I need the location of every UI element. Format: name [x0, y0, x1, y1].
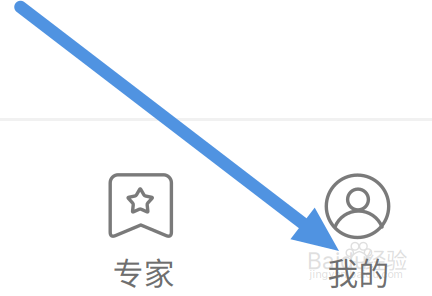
staticText: jingyan.baidu.com: [309, 267, 402, 280]
staticText: 我的: [327, 249, 389, 294]
staticText: 经验: [365, 244, 407, 274]
button[interactable]: 专家: [35, 121, 252, 296]
button[interactable]: 我的: [250, 121, 432, 296]
staticText: 专家: [113, 249, 175, 294]
staticText: Baidu: [307, 247, 367, 275]
